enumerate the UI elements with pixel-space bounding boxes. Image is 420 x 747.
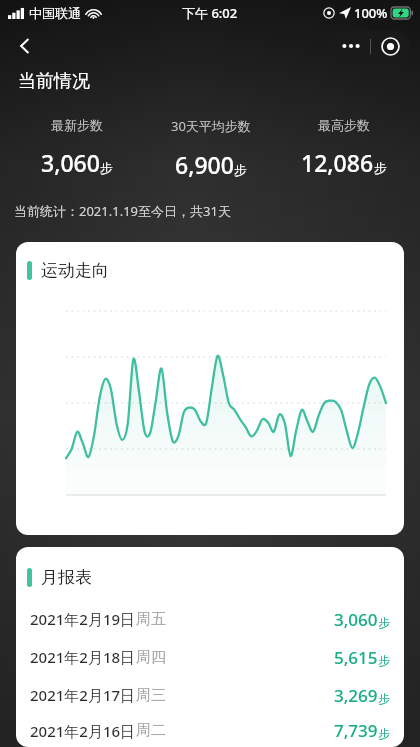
staticText: 6,900	[175, 149, 234, 180]
button[interactable]: 最高步数	[277, 117, 410, 178]
button[interactable]: 2021年2月19日	[16, 600, 404, 638]
staticText: 步	[378, 653, 390, 668]
staticText: 最高步数	[318, 117, 370, 133]
staticText: 周五	[136, 610, 166, 629]
button[interactable]: 最新步数	[10, 117, 144, 178]
staticText: 步	[100, 160, 113, 176]
staticText: 5,615	[334, 646, 378, 669]
staticText: 步	[234, 162, 247, 178]
staticText: 3,269	[334, 684, 378, 707]
staticText: 100%	[354, 4, 388, 22]
staticText: 周二	[136, 721, 166, 740]
staticText: 步	[378, 691, 390, 706]
button[interactable]	[332, 31, 410, 61]
staticText: 周四	[136, 648, 166, 667]
staticText: 2021年2月18日	[30, 647, 136, 667]
staticText: 步	[374, 160, 387, 176]
button[interactable]: 2021年2月16日	[16, 714, 404, 747]
staticText: 2021年2月17日	[30, 685, 136, 705]
button[interactable]: 返回	[8, 29, 42, 63]
staticText: 30天平均步数	[171, 117, 251, 135]
staticText: 月报表	[41, 567, 92, 588]
staticText: 最新步数	[51, 117, 103, 133]
staticText: 12,086	[301, 147, 374, 178]
staticText: 2021年2月16日	[30, 721, 136, 741]
button[interactable]: 运动走向	[16, 242, 404, 535]
staticText: 运动走向	[41, 260, 109, 281]
staticText: 下午 6:02	[182, 4, 238, 22]
staticText: 中国联通	[29, 5, 81, 21]
staticText: 3,060	[41, 147, 100, 178]
staticText: 2021年2月19日	[30, 609, 136, 629]
staticText: 7,739	[334, 719, 378, 742]
staticText: 周三	[136, 686, 166, 705]
button[interactable]: 2021年2月17日	[16, 676, 404, 714]
button[interactable]: 30天平均步数	[144, 117, 277, 180]
button[interactable]: 2021年2月18日	[16, 638, 404, 676]
staticText: 步	[378, 615, 390, 630]
staticText: 3,060	[334, 608, 378, 631]
staticText: 当前统计：2021.1.19至今日，共31天	[14, 202, 231, 220]
staticText: 步	[378, 726, 390, 741]
staticText: 当前情况	[18, 70, 90, 93]
